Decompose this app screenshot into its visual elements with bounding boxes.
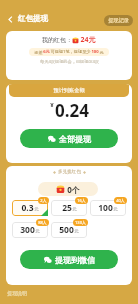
staticText: 6元	[43, 49, 50, 55]
button[interactable]: 全部提现	[20, 129, 118, 148]
staticText: 多兑换红包	[58, 169, 81, 175]
button[interactable]: 提现记录	[104, 15, 133, 26]
staticText: 每天4次提现机会，已提现0/4次	[40, 59, 99, 65]
staticText: 我的红包：	[42, 36, 72, 44]
staticText: 2人	[40, 198, 47, 203]
staticText: 预计到账金额	[53, 87, 85, 94]
staticText: 300	[20, 224, 35, 236]
staticText: 16人	[77, 198, 86, 203]
staticText: 130人	[75, 220, 86, 225]
staticText: 还差	[34, 50, 43, 55]
staticText: 全部提现	[59, 134, 91, 144]
staticText: 40人	[116, 198, 125, 203]
staticText: 25	[62, 202, 72, 214]
staticText: 24元	[80, 35, 96, 45]
button[interactable]: 提现到微信	[20, 250, 118, 269]
button[interactable]: 25	[51, 200, 87, 216]
staticText: 提现到微信	[55, 255, 95, 265]
staticText: 元	[35, 229, 40, 235]
staticText: 元	[74, 229, 79, 235]
button[interactable]: 500	[51, 222, 87, 238]
staticText: 0.3	[21, 202, 34, 214]
button[interactable]: Back	[4, 13, 17, 26]
staticText: 0.24	[55, 99, 89, 122]
staticText: 可提现1笔，提现至少	[50, 49, 91, 55]
button[interactable]: 0.3	[12, 200, 48, 216]
staticText: 提现记录	[108, 17, 129, 24]
staticText: 红包提现	[18, 14, 48, 23]
staticText: 500	[59, 224, 74, 236]
button[interactable]: 300	[12, 222, 48, 238]
staticText: 100	[98, 202, 113, 214]
staticText: 元	[34, 207, 39, 213]
staticText: 元	[113, 207, 118, 213]
staticText: 元	[72, 207, 77, 213]
staticText: 提现说明	[7, 290, 27, 296]
staticText: 元	[99, 50, 104, 55]
button[interactable]: 100	[90, 200, 126, 216]
staticText: 100	[91, 49, 99, 55]
staticText: 0个	[67, 184, 80, 195]
staticText: 88人	[38, 220, 47, 225]
staticText: ¥	[50, 101, 54, 109]
